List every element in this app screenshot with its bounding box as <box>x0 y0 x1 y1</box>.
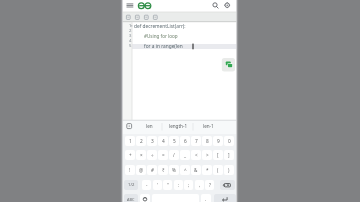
staticText: ' <box>157 182 158 188</box>
button[interactable] <box>222 1 232 10</box>
staticText: 3 <box>151 138 154 145</box>
staticText: % <box>172 167 176 173</box>
staticText: 2 <box>140 138 143 145</box>
staticText: 2 <box>129 28 132 34</box>
button[interactable]: 9 <box>213 136 223 146</box>
staticText: , <box>199 182 201 188</box>
button[interactable]: 4 <box>158 136 168 146</box>
button[interactable]: 0 <box>224 136 234 146</box>
staticText: ABC <box>127 197 135 202</box>
staticText: . <box>205 196 207 202</box>
staticText: ₹ <box>162 167 165 173</box>
staticText: 6 <box>184 138 187 145</box>
button[interactable]: ? <box>205 180 214 190</box>
button[interactable]: ] <box>224 150 234 160</box>
button[interactable]: - <box>142 180 151 190</box>
staticText: ! <box>129 167 131 173</box>
staticText: 8 <box>206 138 209 145</box>
button[interactable]: ' <box>153 180 162 190</box>
button[interactable]: 1 <box>125 136 135 146</box>
staticText: 9 <box>217 138 220 145</box>
button[interactable]: [ <box>213 150 223 160</box>
button[interactable]: 1/2 <box>124 180 138 190</box>
staticText: 0 <box>228 138 231 145</box>
staticText: 1 <box>129 23 132 29</box>
button[interactable]: 6 <box>180 136 190 146</box>
staticText: * <box>206 167 209 173</box>
staticText: #Using for loop <box>144 33 178 39</box>
button[interactable]: 8 <box>202 136 212 146</box>
button[interactable]: 7 <box>191 136 201 146</box>
button[interactable]: % <box>169 165 179 175</box>
staticText: for a in range(len <box>144 43 183 50</box>
button[interactable]: + <box>125 150 135 160</box>
button[interactable]: < <box>191 150 201 160</box>
staticText: [ <box>217 152 219 158</box>
button[interactable]: 3 <box>147 136 157 146</box>
button[interactable]: : <box>174 180 183 190</box>
staticText: ] <box>228 152 230 158</box>
button[interactable]: 5 <box>169 136 179 146</box>
staticText: × <box>140 152 143 158</box>
staticText: 5 <box>129 43 132 49</box>
staticText: " <box>167 182 169 188</box>
staticText: _ <box>184 152 187 158</box>
button[interactable]: # <box>147 165 157 175</box>
button[interactable] <box>214 194 236 202</box>
staticText: & <box>194 167 198 173</box>
staticText: def decrementList(arr): <box>134 23 186 30</box>
staticText: len-1 <box>203 123 214 129</box>
button[interactable]: 2 <box>136 136 146 146</box>
staticText: ? <box>209 182 211 188</box>
staticText: = <box>162 152 165 158</box>
button[interactable]: ₹ <box>158 165 168 175</box>
button[interactable]: & <box>191 165 201 175</box>
staticText: 1 <box>129 138 132 145</box>
staticText: length-1 <box>169 123 188 129</box>
button[interactable]: > <box>202 150 212 160</box>
button[interactable] <box>220 180 235 190</box>
button[interactable]: @ <box>136 165 146 175</box>
staticText: 5 <box>173 138 176 145</box>
button[interactable] <box>125 2 135 10</box>
staticText: 7 <box>195 138 198 145</box>
staticText: ; <box>188 182 190 188</box>
button[interactable]: × <box>136 150 146 160</box>
button[interactable]: ; <box>184 180 193 190</box>
staticText: ^ <box>184 167 187 173</box>
staticText: + <box>129 152 132 158</box>
staticText: - <box>146 182 148 188</box>
button[interactable] <box>140 194 150 202</box>
staticText: 4 <box>129 38 132 44</box>
staticText: # <box>151 167 154 173</box>
button[interactable]: ! <box>125 165 135 175</box>
button[interactable]: * <box>202 165 212 175</box>
staticText: 3 <box>129 33 132 39</box>
button[interactable]: ÷ <box>147 150 157 160</box>
button[interactable]: ) <box>224 165 234 175</box>
button[interactable]: ( <box>213 165 223 175</box>
staticText: < <box>195 152 198 158</box>
staticText: @ <box>139 167 144 173</box>
button[interactable]: ABC <box>124 194 138 202</box>
staticText: 4 <box>162 138 165 145</box>
staticText: ) <box>228 167 230 173</box>
button[interactable]: ^ <box>180 165 190 175</box>
button[interactable] <box>210 1 220 10</box>
button[interactable]: . <box>201 194 211 202</box>
button[interactable]: _ <box>180 150 190 160</box>
staticText: 1/2 <box>128 182 135 188</box>
staticText: len <box>146 123 153 129</box>
button[interactable]: , <box>195 180 204 190</box>
button[interactable]: " <box>163 180 172 190</box>
staticText: > <box>206 152 209 158</box>
staticText: ( <box>217 167 219 173</box>
staticText: / <box>173 152 175 158</box>
button[interactable]: = <box>158 150 168 160</box>
staticText: : <box>178 182 180 188</box>
button[interactable]: / <box>169 150 179 160</box>
staticText: ÷ <box>151 152 154 158</box>
